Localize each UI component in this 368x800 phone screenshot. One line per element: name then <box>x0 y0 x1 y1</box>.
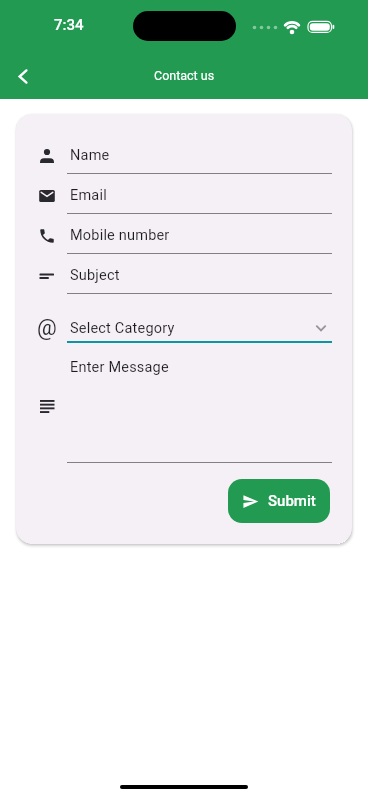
button[interactable]: @ <box>16 315 352 343</box>
staticText: @ <box>37 315 57 341</box>
button[interactable]: Mobile number <box>16 214 352 254</box>
staticText: Contact us <box>154 68 215 83</box>
staticText: Mobile number <box>70 227 170 244</box>
staticText: Subject <box>70 267 120 284</box>
staticText: 7:34 <box>54 16 84 34</box>
staticText: Enter Message <box>70 359 169 376</box>
button[interactable]: Submit <box>228 479 330 523</box>
staticText: Select Category <box>70 320 175 337</box>
button[interactable]: Email <box>16 174 352 214</box>
staticText: Email <box>70 187 107 204</box>
button[interactable]: Name <box>16 134 352 174</box>
button[interactable]: Subject <box>16 254 352 294</box>
button[interactable] <box>6 59 40 93</box>
staticText: Submit <box>268 492 316 510</box>
staticText: Name <box>70 147 110 164</box>
